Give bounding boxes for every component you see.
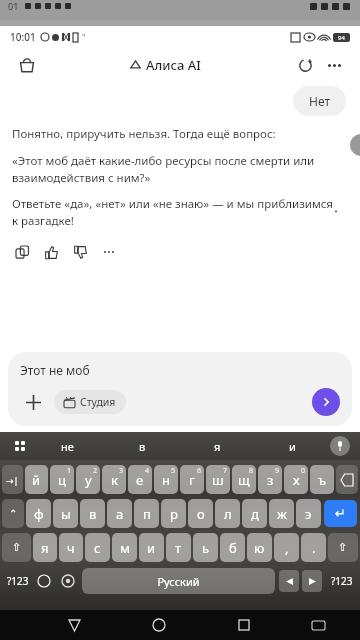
button[interactable]: Toolbar <box>10 436 30 456</box>
button[interactable]: х <box>284 465 308 494</box>
button[interactable]: Left <box>279 570 299 592</box>
staticText: й <box>32 471 41 489</box>
button[interactable]: Send <box>312 388 340 416</box>
button[interactable]: т <box>166 533 191 562</box>
button[interactable]: Dislike <box>70 242 90 262</box>
button[interactable]: Attach <box>20 389 46 415</box>
staticText: ⇧ <box>338 541 348 554</box>
button[interactable]: ц <box>50 465 74 494</box>
staticText: 94 <box>338 34 345 42</box>
button[interactable]: Нет <box>293 86 346 116</box>
button[interactable]: я <box>33 533 57 562</box>
button[interactable]: ш <box>206 465 230 494</box>
button[interactable]: к <box>102 465 126 494</box>
button[interactable]: а <box>107 499 132 528</box>
staticText: →| <box>6 474 19 486</box>
staticText: не <box>61 439 74 454</box>
button[interactable]: More <box>99 242 119 262</box>
button[interactable]: с <box>85 533 110 562</box>
button[interactable]: Back <box>59 610 89 640</box>
button[interactable]: Emoji <box>34 571 54 591</box>
button[interactable]: н <box>154 465 178 494</box>
button[interactable]: Shift right <box>328 533 358 562</box>
button[interactable]: ы <box>53 499 78 528</box>
staticText: з <box>267 471 274 489</box>
staticText: к <box>111 471 118 489</box>
button[interactable]: л <box>215 499 240 528</box>
button[interactable]: Русский <box>82 568 275 594</box>
staticText: ь <box>202 539 210 557</box>
staticText: ?123 <box>7 574 29 588</box>
button[interactable]: Алиса AI <box>126 54 205 76</box>
button[interactable]: у <box>76 465 100 494</box>
button[interactable]: б <box>220 533 245 562</box>
button[interactable]: не <box>30 439 105 454</box>
button[interactable]: Этот не моб <box>8 352 352 426</box>
button[interactable]: я <box>180 439 255 454</box>
button[interactable]: Right <box>302 570 322 592</box>
button[interactable]: з <box>258 465 282 494</box>
button[interactable]: и <box>255 439 330 454</box>
button[interactable]: в <box>80 499 105 528</box>
button[interactable]: . <box>301 533 326 562</box>
staticText: Этот не моб <box>20 362 90 378</box>
button[interactable]: Студия <box>54 390 126 414</box>
button[interactable]: Enter <box>324 500 357 527</box>
staticText: о <box>197 505 205 523</box>
staticText: ш <box>212 471 224 489</box>
button[interactable]: э <box>296 499 321 528</box>
staticText: ф <box>34 505 44 523</box>
staticText: я <box>41 539 49 557</box>
button[interactable]: New chat <box>292 52 318 78</box>
button[interactable]: м <box>112 533 137 562</box>
button[interactable]: ю <box>247 533 272 562</box>
button[interactable]: ?123 <box>2 566 34 596</box>
button[interactable]: й <box>25 465 48 494</box>
staticText: Понятно, приручить нельзя. Тогда ещё воп… <box>12 126 276 142</box>
button[interactable]: п <box>134 499 159 528</box>
button[interactable]: Settings <box>58 571 78 591</box>
staticText: ы <box>61 505 71 523</box>
button[interactable]: Backspace <box>336 465 358 494</box>
button[interactable]: , <box>274 533 299 562</box>
button[interactable]: г <box>180 465 204 494</box>
button[interactable]: Home <box>144 610 174 640</box>
button[interactable]: ?123 <box>326 566 358 596</box>
staticText: ъ <box>318 471 327 489</box>
button[interactable]: е <box>128 465 152 494</box>
button[interactable]: и <box>139 533 164 562</box>
button[interactable]: о <box>188 499 213 528</box>
button[interactable]: ф <box>26 499 51 528</box>
button[interactable]: ч <box>59 533 83 562</box>
staticText: и <box>147 539 156 557</box>
staticText: ↵ <box>335 506 346 521</box>
staticText: 7 <box>223 466 228 476</box>
staticText: 9 <box>275 466 280 476</box>
button[interactable]: ь <box>193 533 218 562</box>
button[interactable]: Like <box>41 242 61 262</box>
staticText: у <box>85 471 92 489</box>
button[interactable]: ъ <box>310 465 334 494</box>
staticText: с <box>94 539 101 557</box>
staticText: я <box>214 439 221 454</box>
staticText: ж <box>277 505 287 523</box>
button[interactable]: в <box>105 439 180 454</box>
staticText: п <box>143 505 151 523</box>
button[interactable]: More options <box>322 53 346 77</box>
staticText: и <box>289 439 296 454</box>
staticText: м <box>120 539 130 557</box>
button[interactable]: Voice input <box>330 436 350 456</box>
button[interactable]: щ <box>232 465 256 494</box>
button[interactable]: Copy <box>12 242 32 262</box>
button[interactable]: Recents <box>229 610 259 640</box>
button[interactable]: Caps <box>2 499 24 528</box>
button[interactable]: Tab <box>2 465 23 494</box>
button[interactable]: ж <box>269 499 294 528</box>
button[interactable]: Hide keyboard <box>303 610 333 640</box>
button[interactable]: Chats <box>14 52 40 78</box>
staticText: 4 <box>145 466 150 476</box>
staticText: ю <box>254 539 265 557</box>
button[interactable]: Shift <box>2 533 31 562</box>
button[interactable]: р <box>161 499 186 528</box>
button[interactable]: д <box>242 499 267 528</box>
